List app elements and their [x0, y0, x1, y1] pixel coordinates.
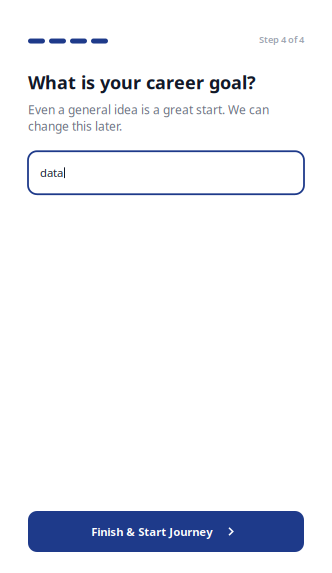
- staticText: data: [40, 165, 63, 180]
- button[interactable]: data: [28, 151, 304, 194]
- staticText: Even a general idea is a great start. We…: [28, 101, 269, 134]
- staticText: What is your career goal?: [28, 70, 256, 94]
- button[interactable]: Finish & Start Journey: [28, 511, 304, 552]
- staticText: Step 4 of 4: [259, 33, 304, 46]
- staticText: Finish & Start Journey: [91, 524, 212, 539]
